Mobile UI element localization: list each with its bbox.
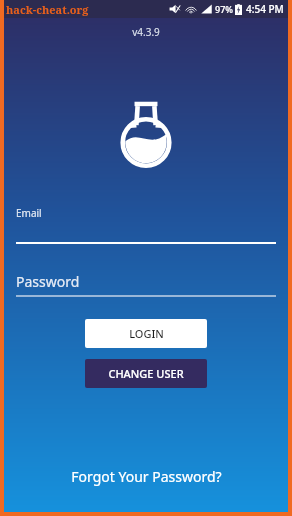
button[interactable]: LOGIN — [85, 319, 207, 348]
staticText: Password — [16, 272, 80, 291]
staticText: LOGIN — [129, 326, 164, 341]
staticText: CHANGE USER — [108, 366, 184, 381]
staticText: Forgot Your Password? — [71, 467, 222, 486]
staticText: Email — [16, 206, 42, 220]
button[interactable]: CHANGE USER — [85, 359, 207, 388]
staticText: 97% — [215, 3, 233, 15]
staticText: hack-cheat.org — [6, 2, 89, 17]
button[interactable]: Forgot Your Password? — [4, 467, 288, 486]
staticText: 4:54 PM — [246, 2, 284, 16]
staticText: v4.3.9 — [132, 25, 160, 39]
button[interactable]: Password — [4, 272, 288, 297]
button[interactable]: Email — [4, 206, 288, 244]
